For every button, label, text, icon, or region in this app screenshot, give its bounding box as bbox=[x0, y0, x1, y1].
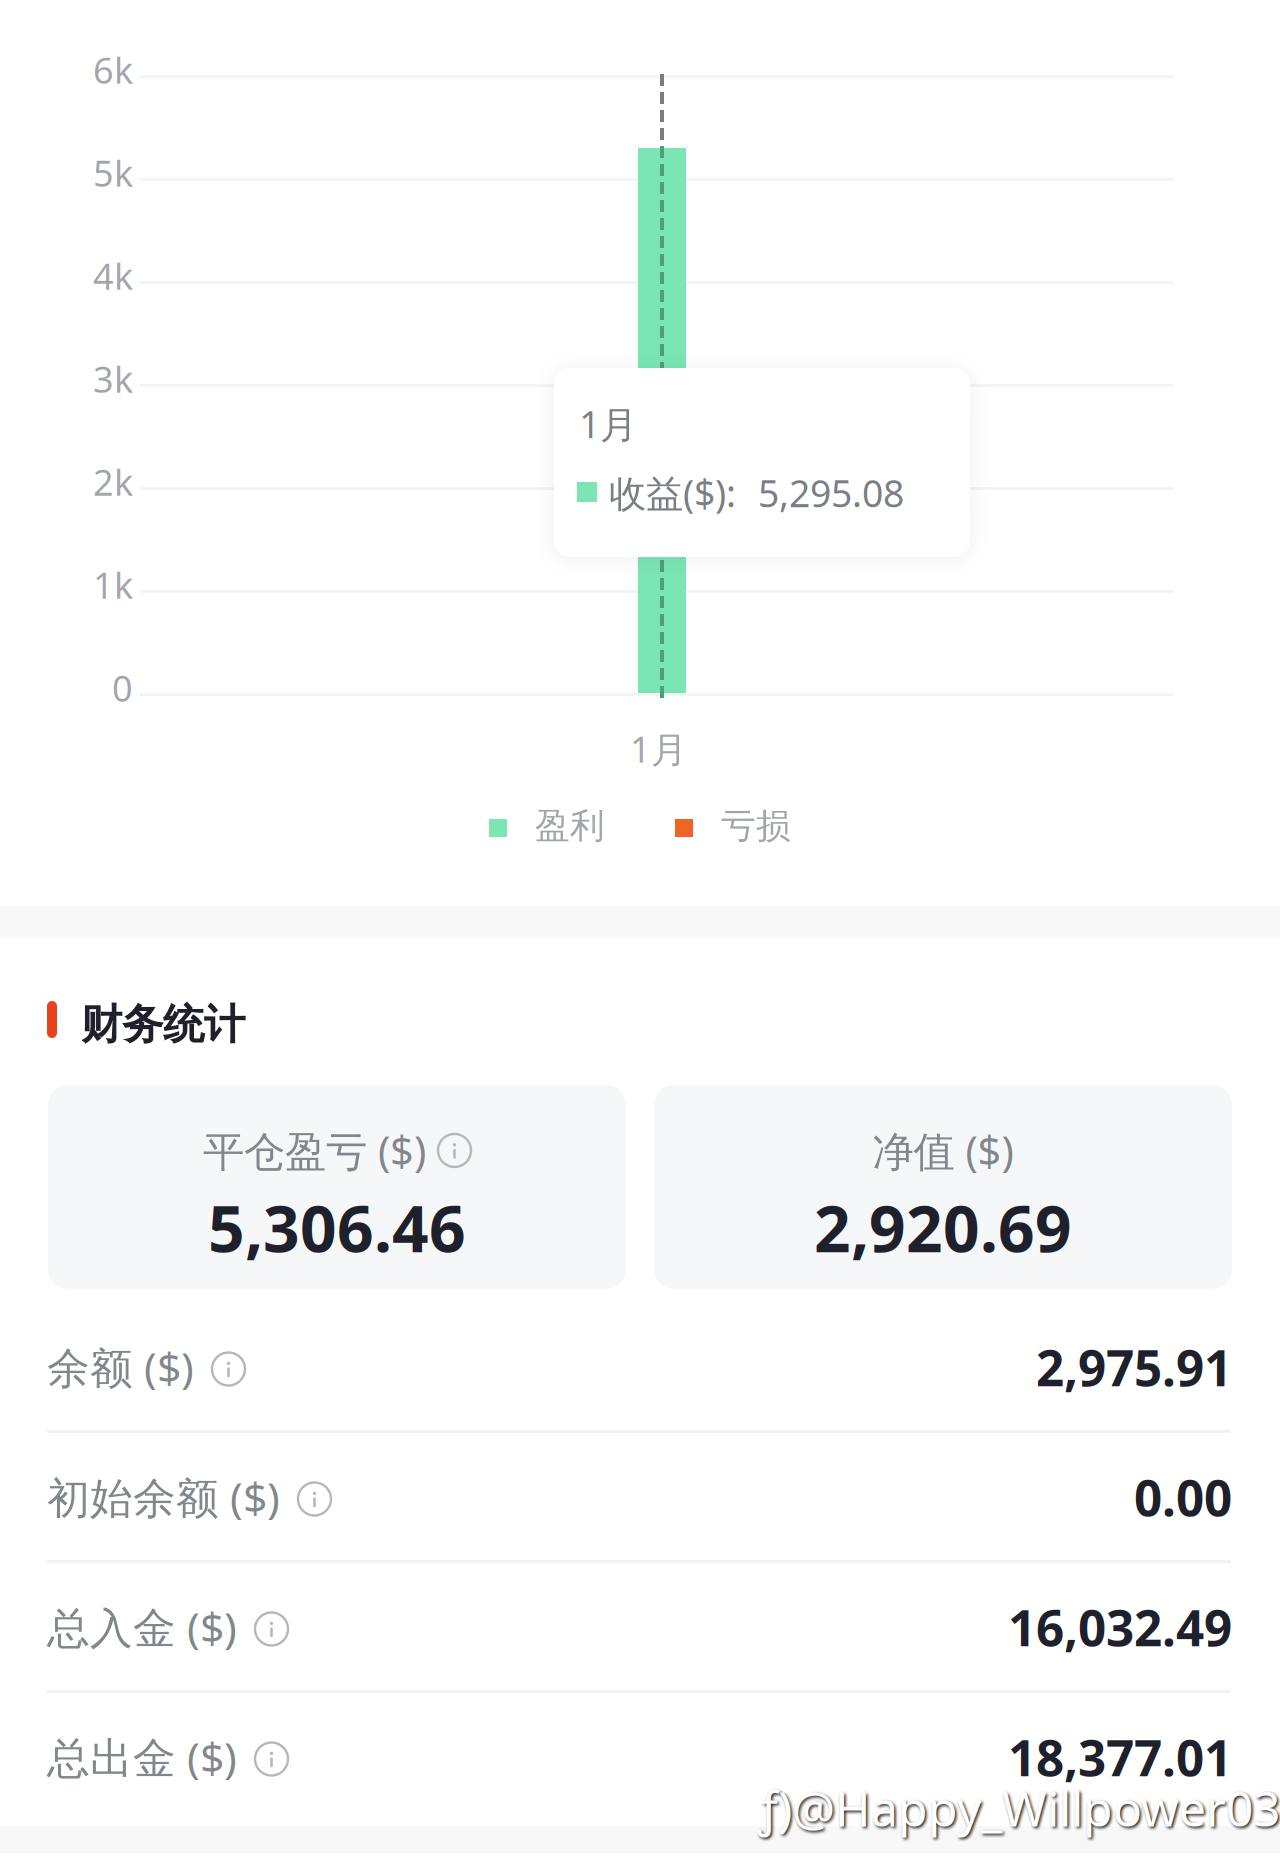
staticText: 6k bbox=[93, 46, 133, 94]
staticText: 5k bbox=[93, 149, 133, 197]
staticText: 0.00 bbox=[1134, 1464, 1232, 1530]
staticText: 2k bbox=[93, 458, 133, 506]
staticText: ƒ)@Happy_Willpower03 bbox=[758, 1776, 1280, 1840]
staticText: 1月 bbox=[579, 399, 637, 449]
staticText: 盈利 bbox=[535, 805, 605, 847]
staticText: 4k bbox=[93, 252, 133, 300]
button[interactable]: 1月 收益 5,295.08 bbox=[638, 148, 686, 693]
staticText: 总入金 ($) bbox=[47, 1599, 237, 1655]
staticText: 2,975.91 bbox=[1036, 1334, 1232, 1400]
staticText: 收益($): 5,295.08 bbox=[609, 468, 904, 518]
staticText: 0 bbox=[112, 664, 133, 712]
staticText: 总出金 ($) bbox=[47, 1729, 237, 1785]
button[interactable]: 总出金 ($) bbox=[47, 1692, 1232, 1822]
button[interactable]: 盈利 bbox=[489, 812, 601, 844]
staticText: 2,920.69 bbox=[814, 1185, 1072, 1270]
staticText: 财务统计 bbox=[81, 999, 245, 1050]
button[interactable]: 余额 ($) bbox=[47, 1302, 1232, 1432]
staticText: 平仓盈亏 ($) bbox=[203, 1123, 426, 1178]
staticText: 3k bbox=[93, 355, 133, 403]
staticText: 净值 ($) bbox=[872, 1123, 1013, 1178]
button[interactable]: 净值 ($) bbox=[654, 1085, 1232, 1289]
staticText: 5,306.46 bbox=[208, 1185, 466, 1270]
staticText: 1月 bbox=[630, 725, 687, 773]
staticText: 亏损 bbox=[721, 805, 791, 847]
staticText: 18,377.01 bbox=[1008, 1724, 1232, 1790]
staticText: 1k bbox=[93, 561, 133, 609]
button[interactable]: 亏损 bbox=[675, 812, 787, 844]
staticText: 余额 ($) bbox=[47, 1339, 194, 1395]
button[interactable]: 总入金 ($) bbox=[47, 1562, 1232, 1692]
button[interactable]: 平仓盈亏 ($) bbox=[48, 1085, 626, 1289]
staticText: 初始余额 ($) bbox=[47, 1469, 280, 1525]
staticText: 16,032.49 bbox=[1008, 1594, 1232, 1660]
button[interactable]: 初始余额 ($) bbox=[47, 1432, 1232, 1562]
